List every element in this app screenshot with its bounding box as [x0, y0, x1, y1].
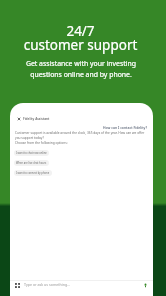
staticText: I want to connect by phone: [16, 171, 50, 175]
button[interactable]: I want to chat now online: [14, 150, 49, 156]
staticText: 24/7 customer support: [0, 22, 161, 54]
button[interactable]: Voice input: [140, 280, 150, 290]
staticText: Get assistance with your investing quest…: [0, 59, 162, 79]
button[interactable]: Apps: [12, 280, 22, 290]
staticText: Type or ask us something...: [24, 282, 71, 287]
staticText: When are live chat hours: [16, 161, 47, 165]
staticText: Customer support is available around the…: [15, 131, 145, 145]
staticText: Fidelity Assistant: [23, 117, 50, 121]
staticText: How can I contact Fidelity?: [103, 125, 148, 130]
staticText: I want to chat now online: [16, 151, 47, 155]
button[interactable]: When are live chat hours: [14, 160, 49, 166]
button[interactable]: Close: [16, 116, 21, 121]
button[interactable]: I want to connect by phone: [14, 170, 52, 176]
